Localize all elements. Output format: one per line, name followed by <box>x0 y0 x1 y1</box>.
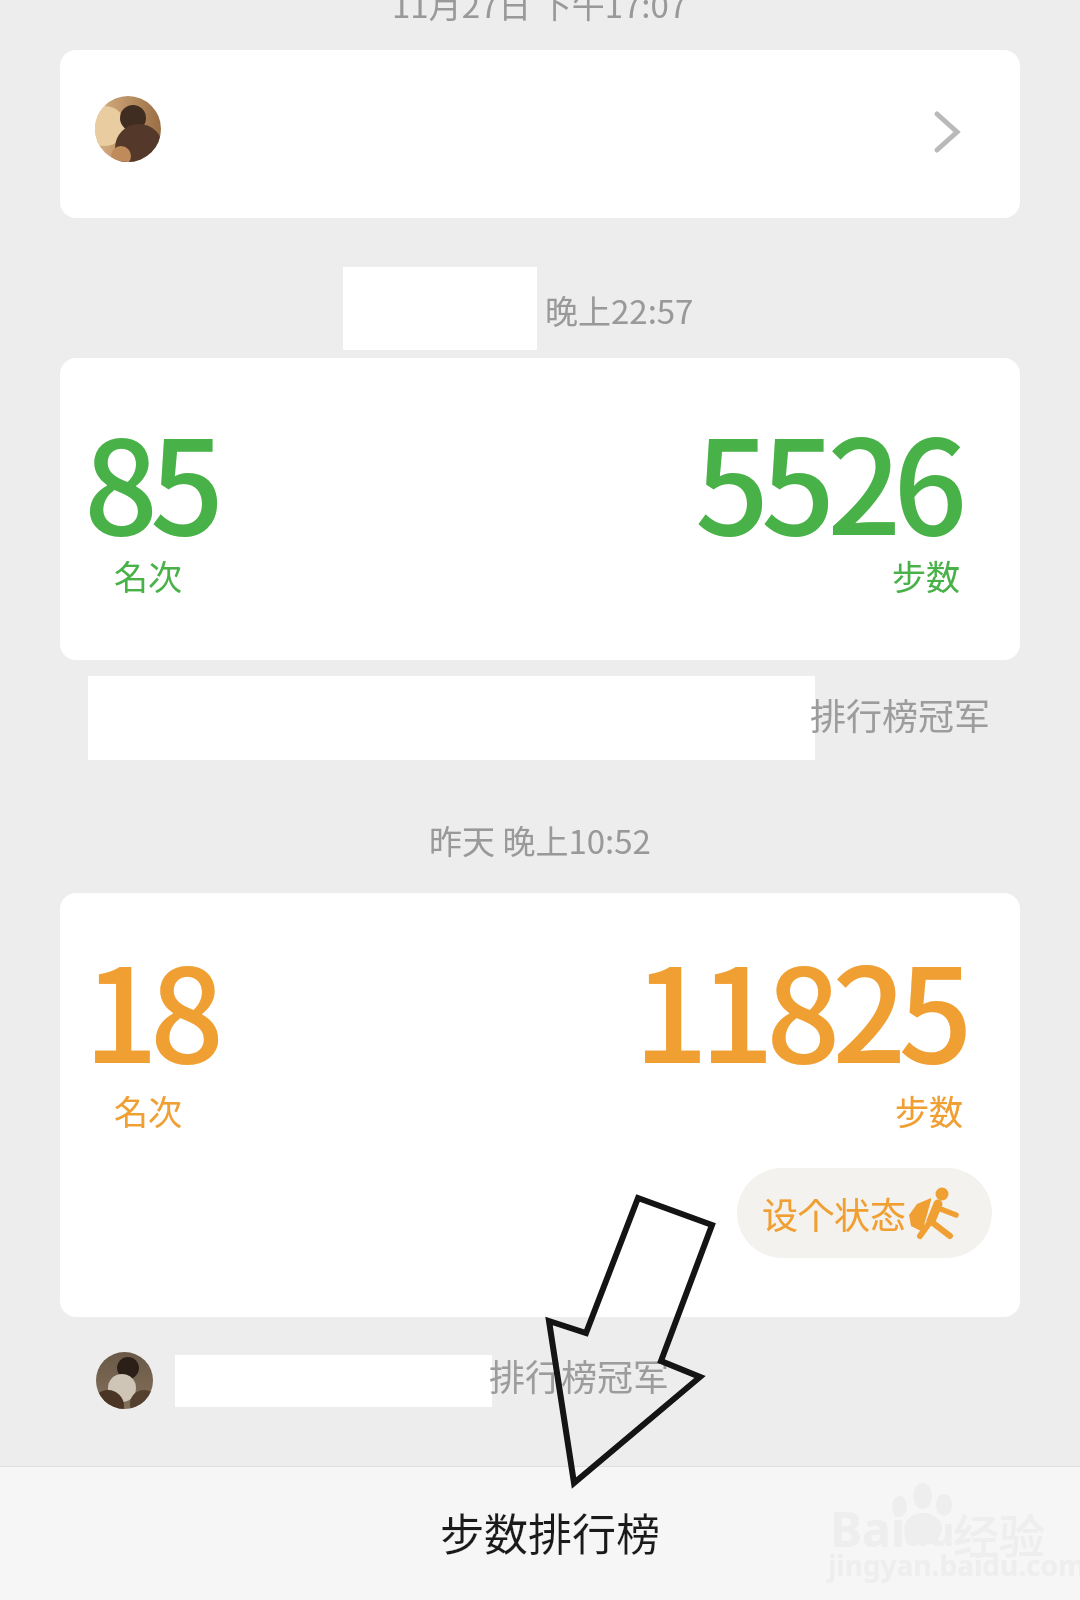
staticText: 18 <box>84 912 217 1100</box>
staticText: 步数 <box>892 551 960 600</box>
staticText: 步数 <box>895 1086 963 1135</box>
staticText: 排行榜冠军 <box>810 688 991 740</box>
staticText: 名次 <box>114 1086 182 1135</box>
staticText: 名次 <box>114 551 182 600</box>
staticText: 85 <box>84 384 217 572</box>
staticText: 5526 <box>695 384 960 572</box>
staticText: du <box>903 1503 955 1557</box>
button[interactable] <box>60 358 1020 660</box>
staticText: 设个状态 <box>762 1187 907 1239</box>
staticText: 11月27日 下午17:07 <box>392 0 688 28</box>
staticText: 昨天 晚上10:52 <box>429 816 651 864</box>
button[interactable] <box>60 50 1020 218</box>
staticText: 经验 <box>953 1500 1045 1567</box>
button[interactable]: 步数排行榜 <box>380 1477 720 1587</box>
staticText: 步数排行榜 <box>440 1500 660 1564</box>
button[interactable] <box>60 893 1020 1317</box>
staticText: Bai <box>830 1496 906 1561</box>
staticText: 晚上22:57 <box>545 286 694 334</box>
button[interactable]: 设个状态 <box>737 1168 992 1258</box>
staticText: 排行榜冠军 <box>489 1349 670 1401</box>
staticText: 11825 <box>634 912 965 1100</box>
staticText: jingyan.baidu.com <box>828 1546 1080 1584</box>
